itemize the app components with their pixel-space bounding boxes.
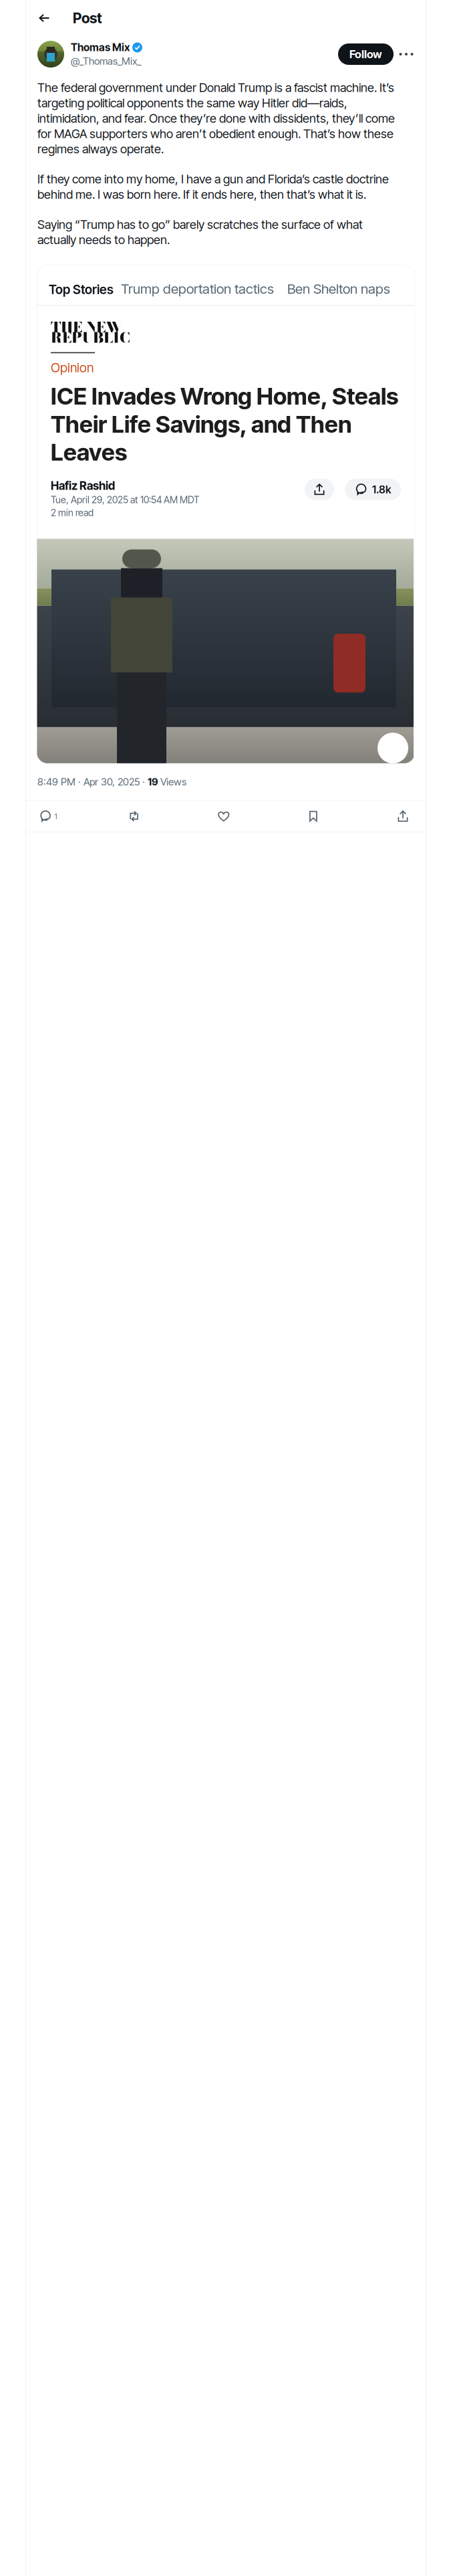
button[interactable]: Back bbox=[33, 7, 55, 29]
button[interactable]: Reply bbox=[26, 801, 57, 832]
staticText: 1 bbox=[54, 812, 57, 821]
button[interactable]: Repost bbox=[121, 801, 147, 832]
staticText: Follow bbox=[349, 47, 382, 61]
staticText: Thomas Mix bbox=[71, 41, 130, 54]
button[interactable]: Share bbox=[390, 801, 416, 832]
staticText: Opinion bbox=[51, 360, 94, 375]
button[interactable]: Like bbox=[211, 801, 236, 832]
staticText: Saying “Trump has to go” barely scratche… bbox=[37, 217, 363, 247]
staticText: 1.8k bbox=[372, 483, 391, 496]
staticText: Ben Shelton naps bbox=[287, 281, 390, 297]
staticText: The federal government under Donald Trum… bbox=[37, 80, 395, 156]
staticText: 8:49 PM · Apr 30, 2025 · bbox=[37, 776, 148, 788]
staticText: Top Stories bbox=[49, 282, 114, 297]
staticText: 19 bbox=[148, 776, 158, 788]
staticText: ICE Invades Wrong Home, Steals Their Lif… bbox=[51, 382, 398, 466]
button[interactable]: Share article bbox=[305, 479, 334, 500]
button[interactable]: Follow bbox=[338, 43, 394, 65]
staticText: 2 min read bbox=[51, 507, 94, 518]
button[interactable]: More bbox=[396, 44, 416, 64]
staticText: THE NEW REPUBLIC bbox=[51, 316, 130, 348]
staticText: Hafiz Rashid bbox=[51, 479, 115, 493]
staticText: Post bbox=[73, 9, 102, 27]
staticText: If they come into my home, I have a gun … bbox=[37, 172, 389, 202]
button[interactable]: 1.8k bbox=[345, 479, 401, 500]
staticText: Views bbox=[158, 776, 186, 788]
staticText: Trump deportation tactics bbox=[121, 281, 274, 297]
button[interactable]: Bookmark bbox=[301, 801, 326, 832]
staticText: Tue, April 29, 2025 at 10:54 AM MDT bbox=[51, 494, 199, 506]
staticText: @_Thomas_Mix_ bbox=[71, 55, 141, 67]
